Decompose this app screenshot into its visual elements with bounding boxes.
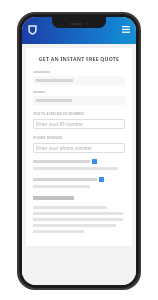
staticText: PHONE NUMBER bbox=[33, 135, 63, 140]
staticText: GET AN INSTANT FREE QUOTE bbox=[33, 55, 125, 62]
button[interactable]: Home logo bbox=[27, 24, 38, 35]
staticText: Enter your phone number bbox=[36, 145, 93, 151]
button[interactable]: Enter your phone number bbox=[33, 143, 125, 153]
button[interactable]: Enter your ID number bbox=[33, 119, 125, 129]
button[interactable] bbox=[33, 96, 125, 105]
button[interactable] bbox=[33, 76, 125, 85]
button[interactable] bbox=[33, 177, 125, 182]
staticText: Enter your ID number bbox=[36, 121, 84, 127]
staticText: SOUTH AFRICAN ID NUMBER bbox=[33, 111, 84, 116]
button[interactable] bbox=[33, 159, 125, 164]
button[interactable]: Menu bbox=[120, 24, 131, 35]
